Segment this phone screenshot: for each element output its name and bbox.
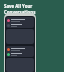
button[interactable]	[6, 18, 34, 23]
button[interactable]	[6, 23, 34, 27]
button[interactable]	[6, 47, 34, 52]
staticText: Save All Your	[4, 3, 33, 9]
button[interactable]	[6, 52, 34, 56]
staticText: Conversations	[4, 9, 36, 15]
